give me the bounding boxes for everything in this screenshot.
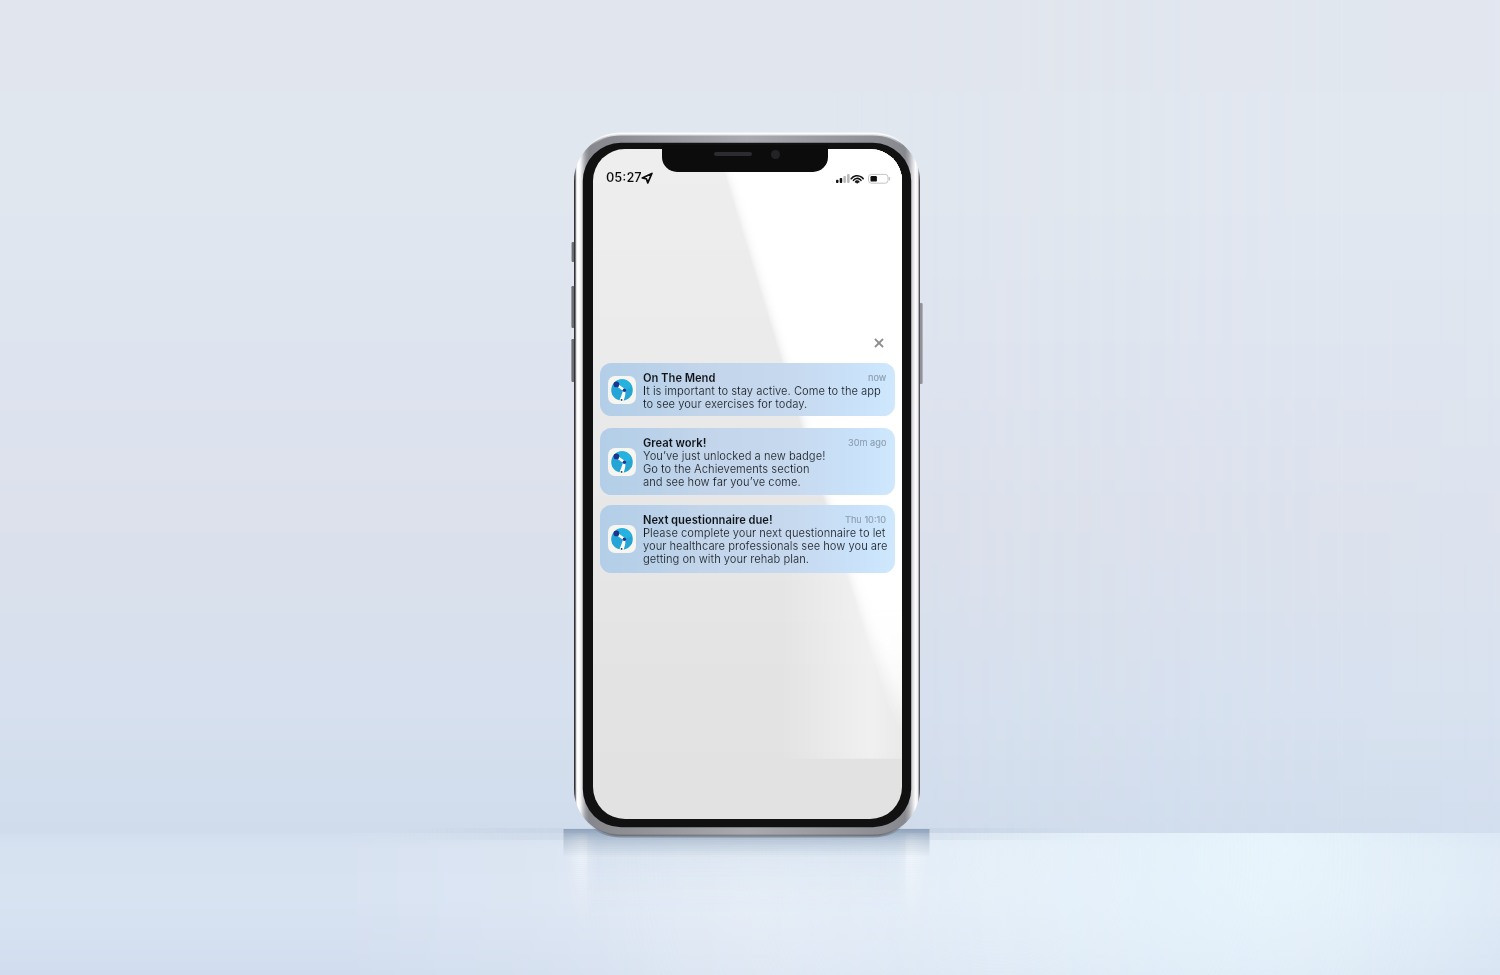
staticText: 30m ago: [848, 437, 887, 448]
staticText: to see your exercises for today.: [643, 397, 808, 410]
button[interactable]: Close notifications: [868, 332, 890, 354]
staticText: your healthcare professionals see how yo…: [643, 539, 887, 552]
staticText: It is important to stay active. Come to …: [643, 384, 881, 397]
staticText: Thu 10:10: [845, 514, 887, 525]
button[interactable]: Great work!: [600, 428, 895, 495]
staticText: now: [868, 372, 887, 383]
staticText: and see how far you’ve come.: [643, 475, 801, 488]
staticText: On The Mend: [643, 371, 716, 384]
staticText: Please complete your next questionnaire …: [643, 526, 886, 539]
staticText: Great work!: [643, 436, 707, 449]
button[interactable]: Next questionnaire due!: [600, 505, 895, 573]
button[interactable]: On The Mend: [600, 363, 895, 416]
staticText: Next questionnaire due!: [643, 513, 773, 526]
staticText: getting on with your rehab plan.: [643, 552, 809, 565]
staticText: Go to the Achievements section: [643, 462, 810, 475]
staticText: 05:27: [606, 170, 642, 185]
staticText: You’ve just unlocked a new badge!: [643, 449, 826, 462]
